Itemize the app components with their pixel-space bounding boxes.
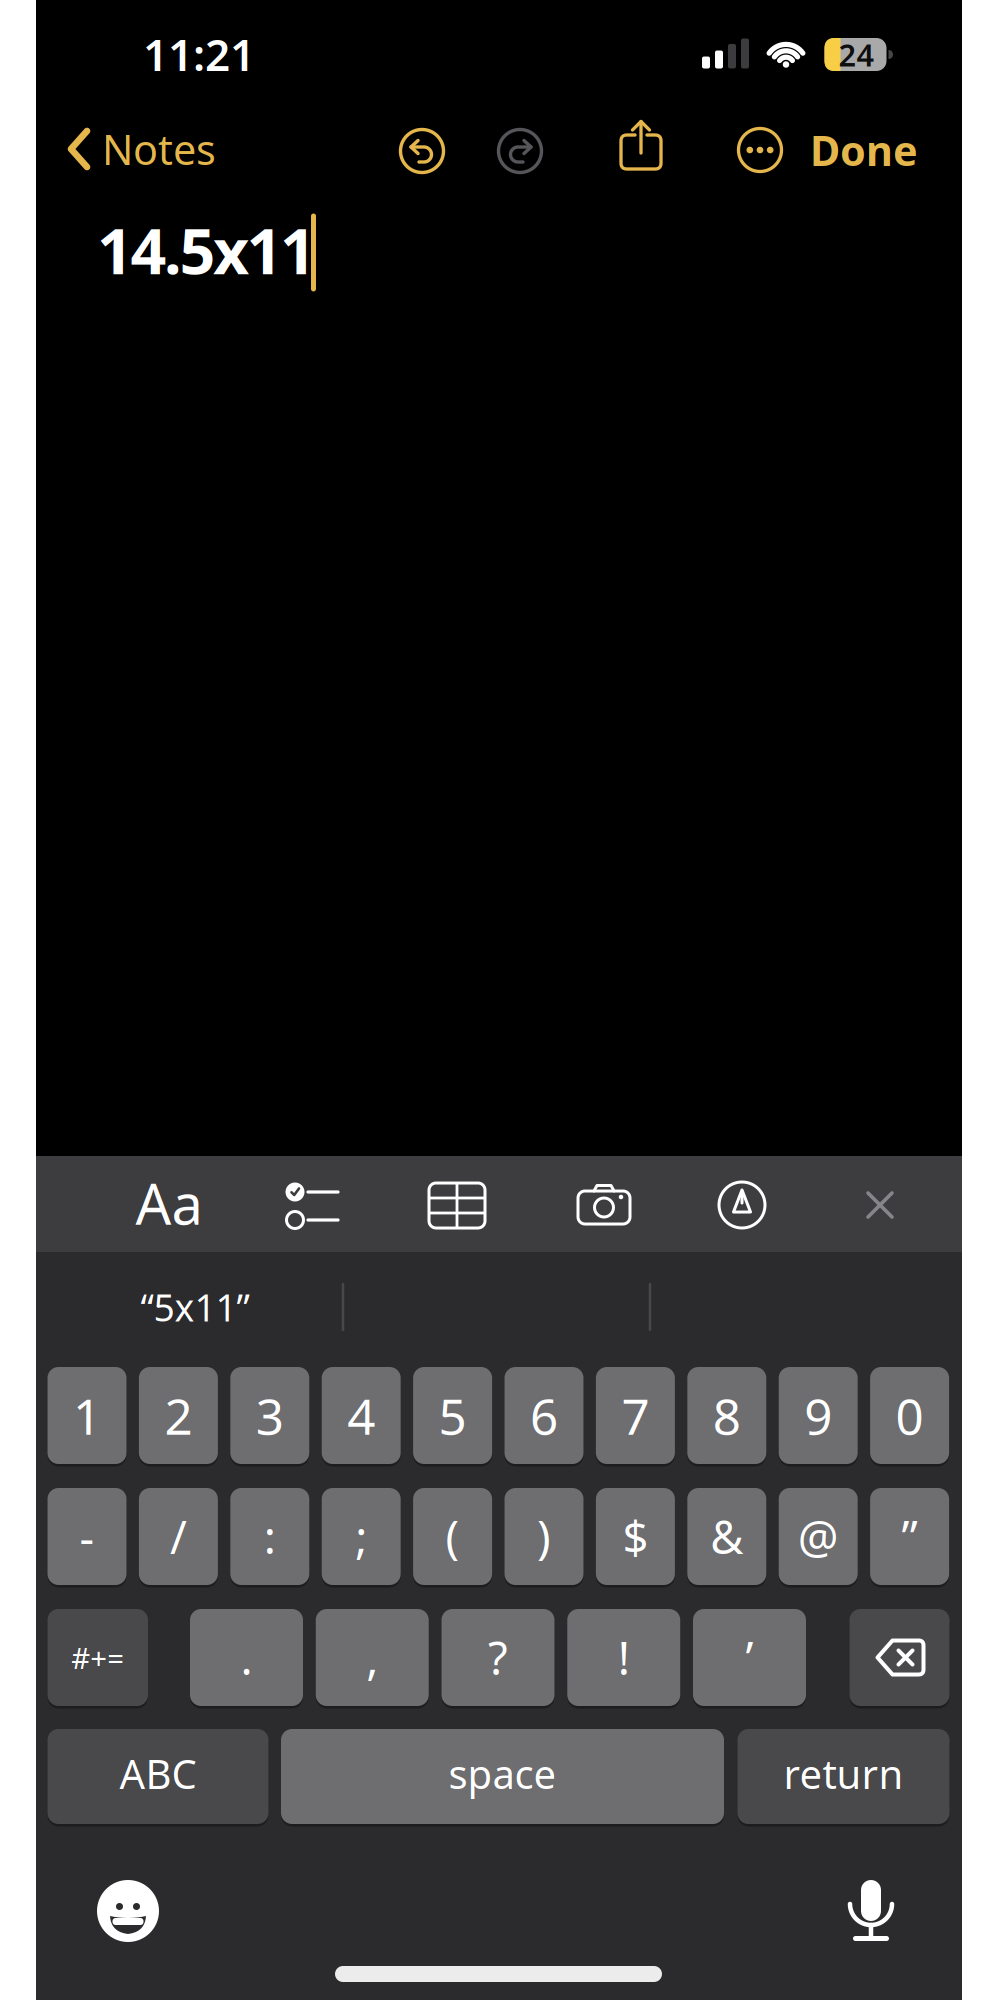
button[interactable]: Undo [398, 127, 446, 175]
staticText: - [79, 1506, 94, 1567]
button[interactable]: @ [779, 1486, 858, 1586]
staticText: . [240, 1627, 252, 1688]
button[interactable]: 6 [504, 1365, 583, 1465]
staticText: 2 [164, 1383, 192, 1448]
button[interactable]: Dictation [843, 1873, 899, 1945]
staticText: #+= [71, 1638, 124, 1677]
button[interactable]: - [47, 1486, 126, 1586]
staticText: Done [810, 123, 918, 177]
staticText: 14.5x11 [97, 208, 316, 292]
button[interactable]: ( [413, 1486, 492, 1586]
button[interactable]: Redo [496, 127, 544, 175]
button[interactable]: ! [567, 1607, 680, 1707]
button[interactable]: #+= [47, 1607, 148, 1707]
button[interactable]: 9 [779, 1365, 858, 1465]
button[interactable]: 7 [596, 1365, 675, 1465]
staticText: , [366, 1627, 378, 1688]
staticText: 5 [439, 1383, 467, 1448]
staticText: ABC [119, 1747, 196, 1800]
button[interactable]: 1 [47, 1365, 126, 1465]
staticText: ’ [745, 1627, 753, 1688]
button[interactable]: 0 [870, 1365, 949, 1465]
button[interactable]: Emoji [96, 1879, 160, 1943]
button[interactable]: : [230, 1486, 309, 1586]
button[interactable]: , [316, 1607, 429, 1707]
button[interactable]: Checklist [282, 1180, 342, 1232]
staticText: Notes [102, 122, 216, 176]
button[interactable]: ABC [47, 1727, 268, 1825]
staticText: Aa [135, 1166, 202, 1240]
staticText: 24 [838, 34, 874, 75]
staticText: 8 [713, 1383, 741, 1448]
staticText: space [448, 1747, 556, 1800]
button[interactable]: . [190, 1607, 303, 1707]
staticText: “5x11” [140, 1282, 249, 1332]
button[interactable]: Done [810, 123, 918, 177]
staticText: / [170, 1506, 187, 1567]
button[interactable]: ; [322, 1486, 401, 1586]
button[interactable]: Dismiss keyboard toolbar [860, 1185, 900, 1225]
button[interactable]: Markup [716, 1179, 768, 1231]
staticText: @ [798, 1506, 839, 1567]
button[interactable]: ? [441, 1607, 554, 1707]
button[interactable]: ” [870, 1486, 949, 1586]
button[interactable]: & [687, 1486, 766, 1586]
button[interactable]: Format [135, 1166, 202, 1240]
button[interactable]: ) [504, 1486, 583, 1586]
button[interactable]: Table [426, 1179, 488, 1231]
button[interactable]: Camera [574, 1182, 634, 1230]
staticText: ” [902, 1506, 918, 1567]
button[interactable]: “5x11” [45, 1257, 345, 1357]
staticText: ( [446, 1506, 460, 1567]
button[interactable]: Back [67, 122, 216, 176]
button[interactable]: 3 [230, 1365, 309, 1465]
staticText: ? [488, 1627, 508, 1688]
staticText: 9 [804, 1383, 832, 1448]
staticText: ; [355, 1506, 367, 1567]
staticText: & [710, 1506, 743, 1567]
staticText: 3 [256, 1383, 284, 1448]
button[interactable]: return [737, 1727, 949, 1825]
button[interactable]: 4 [322, 1365, 401, 1465]
button[interactable]: 5 [413, 1365, 492, 1465]
button[interactable]: 8 [687, 1365, 766, 1465]
staticText: 7 [621, 1383, 649, 1448]
staticText: 4 [347, 1383, 375, 1448]
staticText: 0 [896, 1383, 924, 1448]
staticText: 11:21 [143, 25, 255, 83]
button[interactable]: More [736, 126, 784, 174]
staticText: $ [622, 1506, 648, 1567]
button[interactable]: / [139, 1486, 218, 1586]
button[interactable]: $ [596, 1486, 675, 1586]
button[interactable]: ’ [693, 1607, 806, 1707]
staticText: return [783, 1747, 903, 1800]
staticText: ) [537, 1506, 551, 1567]
button[interactable]: Share [615, 118, 667, 176]
button[interactable]: Delete [849, 1607, 949, 1707]
staticText: : [264, 1506, 276, 1567]
staticText: 1 [73, 1383, 101, 1448]
staticText: ! [618, 1627, 630, 1688]
staticText: 6 [530, 1383, 558, 1448]
button[interactable]: 2 [139, 1365, 218, 1465]
button[interactable]: space [281, 1727, 724, 1825]
